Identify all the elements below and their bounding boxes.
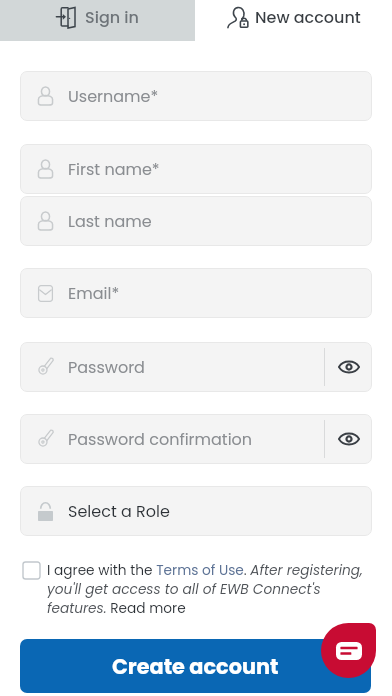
button[interactable]: First name*	[20, 144, 372, 194]
staticText: Email*	[68, 282, 120, 304]
staticText: Create account	[112, 652, 279, 681]
staticText: New account	[255, 6, 361, 28]
button[interactable]: Email*	[20, 268, 372, 318]
staticText: Last name	[68, 210, 152, 232]
button[interactable]: Show password	[325, 342, 372, 392]
button[interactable]: Select a Role	[20, 486, 372, 536]
button[interactable]: Last name	[20, 196, 372, 246]
button[interactable]: Username*	[20, 71, 372, 121]
button[interactable]: Password	[20, 342, 372, 392]
staticText: Password confirmation	[68, 428, 253, 450]
staticText: Password	[68, 356, 145, 378]
staticText: Sign in	[85, 6, 139, 28]
button[interactable]: Password confirmation	[20, 414, 372, 464]
staticText: I agree with the Terms of Use. After reg…	[47, 561, 372, 617]
staticText: Username*	[68, 85, 159, 107]
button[interactable]: Create account	[20, 639, 371, 693]
button[interactable]: I agree with the Terms of Use	[23, 562, 40, 579]
button[interactable]: Sign in	[0, 0, 195, 41]
staticText: First name*	[68, 158, 160, 180]
button[interactable]: New account	[195, 0, 392, 41]
staticText: Select a Role	[68, 500, 170, 522]
button[interactable]: Show password	[325, 414, 372, 464]
button[interactable]: Chat	[321, 623, 376, 678]
